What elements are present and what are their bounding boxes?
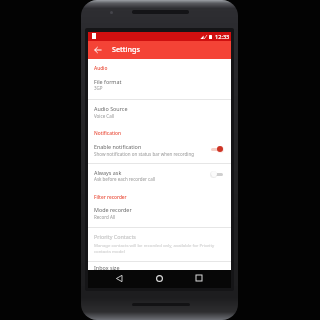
staticText: Settings [112, 44, 140, 54]
staticText: Always ask [94, 169, 122, 176]
staticText: Record All [94, 214, 116, 220]
button[interactable] [88, 261, 231, 270]
staticText: Inbox size [94, 264, 120, 271]
staticText: File format [94, 78, 122, 85]
button[interactable] [88, 76, 231, 99]
staticText: Filter recorder [94, 194, 127, 201]
staticText: Audio Source [94, 105, 128, 112]
staticText: Enable notification [94, 143, 142, 150]
staticText: Notification [94, 130, 121, 137]
staticText: Audio [94, 65, 108, 72]
staticText: Voice Call [94, 113, 115, 119]
button[interactable] [88, 204, 231, 227]
staticText: 12:33 [215, 33, 230, 41]
button[interactable] [88, 140, 231, 163]
staticText: Priority Contacts [94, 233, 136, 240]
button[interactable]: Disabled switch [210, 169, 224, 179]
button[interactable] [88, 164, 231, 191]
button[interactable]: Home [152, 271, 166, 285]
staticText: Manage contacts will be recorded only, a… [94, 242, 224, 254]
button[interactable]: Recent apps [192, 271, 206, 285]
button[interactable]: Back [91, 43, 105, 57]
staticText: Ask before each recorder call [94, 176, 156, 182]
button[interactable] [88, 228, 231, 261]
button[interactable] [88, 100, 231, 127]
staticText: Mode recorder [94, 206, 132, 213]
button[interactable]: Back [112, 271, 126, 285]
staticText: Show notification on status bar when rec… [94, 151, 195, 157]
button[interactable]: Enabled switch [210, 144, 224, 154]
staticText: 3GP [94, 85, 103, 91]
